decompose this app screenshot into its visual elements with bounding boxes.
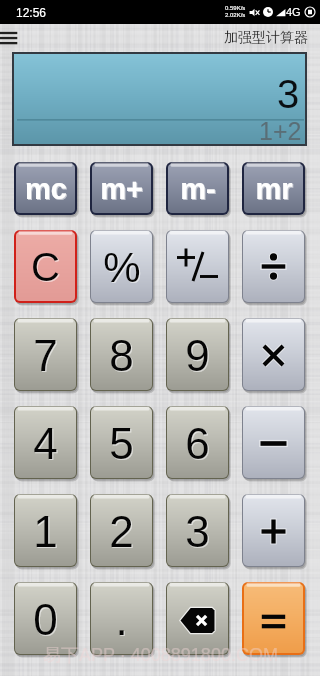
staticText: C	[31, 245, 60, 290]
button[interactable]: mc	[14, 162, 77, 215]
button[interactable]: m+	[90, 162, 153, 215]
button[interactable]: Operator	[242, 494, 305, 567]
button[interactable]: Divide	[242, 230, 305, 303]
button[interactable]: Plus minus	[166, 230, 229, 303]
button[interactable]: %	[90, 230, 153, 303]
button[interactable]: Backspace	[166, 582, 229, 655]
button[interactable]: Operator	[242, 318, 305, 391]
staticText: 易下APP · 4008891800.COM	[43, 644, 278, 667]
button[interactable]: 9	[166, 318, 229, 391]
button[interactable]: Menu	[0, 27, 24, 49]
button[interactable]: 5	[90, 406, 153, 479]
staticText: .	[116, 596, 129, 645]
staticText: 0	[33, 595, 58, 644]
staticText: 0.59K/s	[225, 5, 246, 12]
staticText: 4	[33, 419, 58, 468]
staticText: m+	[101, 174, 144, 206]
staticText: 3	[277, 72, 300, 117]
button[interactable]: 6	[166, 406, 229, 479]
button[interactable]: 3	[166, 494, 229, 567]
staticText: 2.02K/s	[225, 12, 246, 19]
staticText: m-	[180, 173, 216, 205]
staticText: mr	[255, 173, 293, 205]
button[interactable]: 4	[14, 406, 77, 479]
button[interactable]: 2	[90, 494, 153, 567]
staticText: mc	[25, 173, 67, 205]
staticText: 5	[110, 420, 135, 469]
button[interactable]: C	[14, 230, 77, 303]
staticText: 4G	[286, 6, 301, 18]
staticText: 12:56	[16, 6, 47, 19]
staticText: 1	[33, 507, 58, 556]
staticText: 4	[34, 420, 59, 469]
staticText: 8	[109, 331, 134, 380]
staticText: %	[103, 244, 141, 291]
button[interactable]: mr	[242, 162, 305, 215]
staticText: 加强型计算器	[224, 29, 308, 47]
staticText: 0	[34, 596, 59, 645]
button[interactable]: 7	[14, 318, 77, 391]
staticText: 7	[34, 332, 59, 381]
button[interactable]: 0	[14, 582, 77, 655]
staticText: C	[32, 246, 61, 291]
staticText: 1+2	[259, 117, 302, 145]
staticText: 9	[185, 331, 210, 380]
button[interactable]: m-	[166, 162, 229, 215]
staticText: 6	[186, 420, 211, 469]
button[interactable]: .	[90, 582, 153, 655]
staticText: 6	[185, 419, 210, 468]
staticText: 1	[34, 508, 59, 557]
staticText: m+	[100, 173, 143, 205]
staticText: 7	[33, 331, 58, 380]
staticText: .	[115, 595, 128, 644]
staticText: m-	[181, 174, 217, 206]
staticText: 2	[109, 507, 134, 556]
staticText: 9	[186, 332, 211, 381]
staticText: 3	[185, 507, 210, 556]
button[interactable]: 8	[90, 318, 153, 391]
button[interactable]: Equals	[242, 582, 305, 655]
staticText: 2	[110, 508, 135, 557]
staticText: mc	[26, 174, 68, 206]
staticText: 8	[110, 332, 135, 381]
staticText: 3	[186, 508, 211, 557]
staticText: %	[104, 245, 142, 292]
staticText: 5	[109, 419, 134, 468]
staticText: mr	[256, 174, 294, 206]
button[interactable]: 1	[14, 494, 77, 567]
button[interactable]: Operator	[242, 406, 305, 479]
